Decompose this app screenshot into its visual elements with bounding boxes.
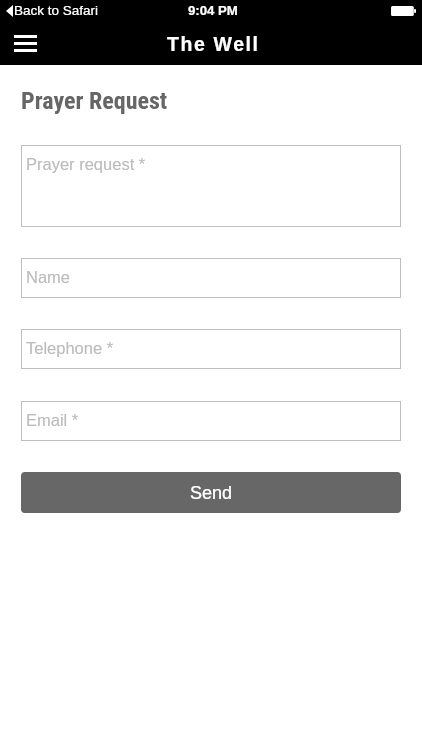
staticText: Send xyxy=(190,483,233,503)
button[interactable]: Send xyxy=(21,472,401,513)
staticText: Telephone * xyxy=(26,339,114,357)
button[interactable]: Prayer request * xyxy=(21,145,401,227)
staticText: Email * xyxy=(26,411,79,429)
staticText: Back to Safari xyxy=(14,3,99,18)
button[interactable]: Back to Safari xyxy=(6,3,99,18)
button[interactable]: Menu xyxy=(5,24,45,64)
staticText: Prayer request * xyxy=(26,155,146,173)
staticText: Name xyxy=(26,268,71,286)
staticText: 9:04 PM xyxy=(188,3,238,18)
staticText: The Well xyxy=(167,33,260,55)
button[interactable]: Telephone * xyxy=(21,329,401,369)
staticText: Prayer Request xyxy=(21,87,168,115)
button[interactable]: Name xyxy=(21,258,401,298)
button[interactable]: Email * xyxy=(21,401,401,441)
